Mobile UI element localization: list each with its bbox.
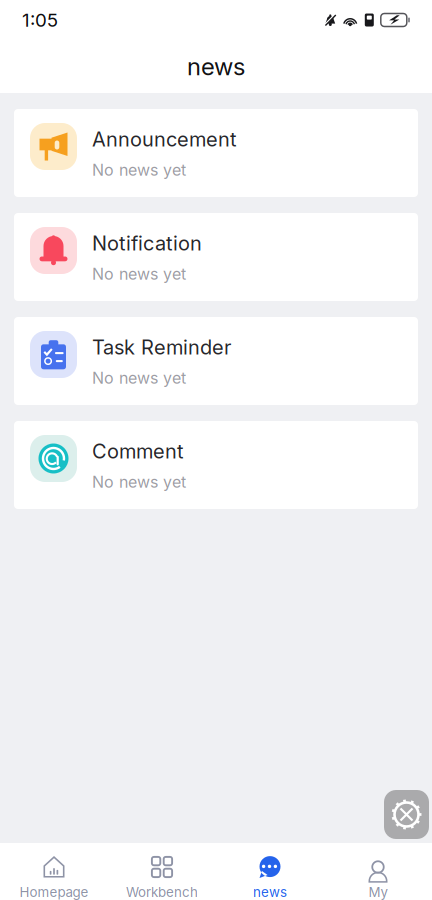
button[interactable]: Announcement <box>14 109 418 197</box>
staticText: news <box>187 52 245 81</box>
staticText: 1:05 <box>22 9 58 31</box>
staticText: Workbench <box>126 884 198 900</box>
staticText: news <box>253 884 287 900</box>
button[interactable]: My <box>324 843 432 900</box>
staticText: No news yet <box>92 264 186 284</box>
staticText: Task Reminder <box>92 335 231 359</box>
staticText: Homepage <box>19 884 88 900</box>
staticText: My <box>368 884 387 900</box>
button[interactable]: Task Reminder <box>14 317 418 405</box>
button[interactable]: Comment <box>14 421 418 509</box>
staticText: Notification <box>92 231 202 255</box>
button[interactable]: news <box>216 843 324 900</box>
staticText: Announcement <box>92 127 237 151</box>
staticText: No news yet <box>92 160 186 180</box>
staticText: No news yet <box>92 368 186 388</box>
button[interactable]: Settings <box>384 790 429 839</box>
button[interactable]: Notification <box>14 213 418 301</box>
button[interactable]: Workbench <box>108 843 216 900</box>
staticText: Comment <box>92 439 184 463</box>
button[interactable]: Homepage <box>0 843 108 900</box>
staticText: No news yet <box>92 472 186 492</box>
